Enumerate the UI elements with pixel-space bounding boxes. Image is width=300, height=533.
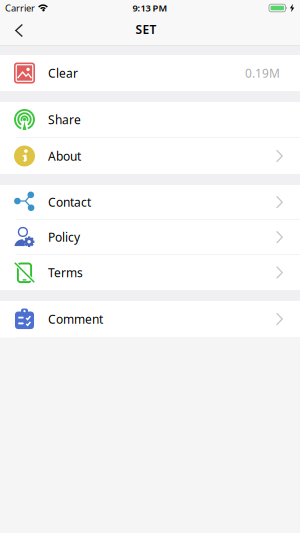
- button[interactable]: Policy: [0, 220, 300, 254]
- staticText: Carrier: [5, 2, 35, 14]
- button[interactable]: Back: [0, 18, 23, 43]
- staticText: About: [48, 148, 81, 164]
- staticText: Clear: [48, 65, 78, 81]
- staticText: 9:13 PM: [132, 2, 167, 14]
- staticText: 0.19M: [245, 65, 280, 81]
- staticText: Contact: [48, 194, 91, 210]
- button[interactable]: Contact: [0, 185, 300, 219]
- staticText: Comment: [48, 311, 103, 327]
- staticText: Share: [48, 112, 81, 128]
- button[interactable]: Comment: [0, 301, 300, 337]
- button[interactable]: Clear: [0, 55, 300, 91]
- staticText: Policy: [48, 229, 80, 245]
- button[interactable]: About: [0, 138, 300, 174]
- button[interactable]: Share: [0, 102, 300, 137]
- staticText: Terms: [48, 264, 83, 280]
- staticText: SET: [135, 21, 156, 37]
- button[interactable]: Terms: [0, 255, 300, 290]
